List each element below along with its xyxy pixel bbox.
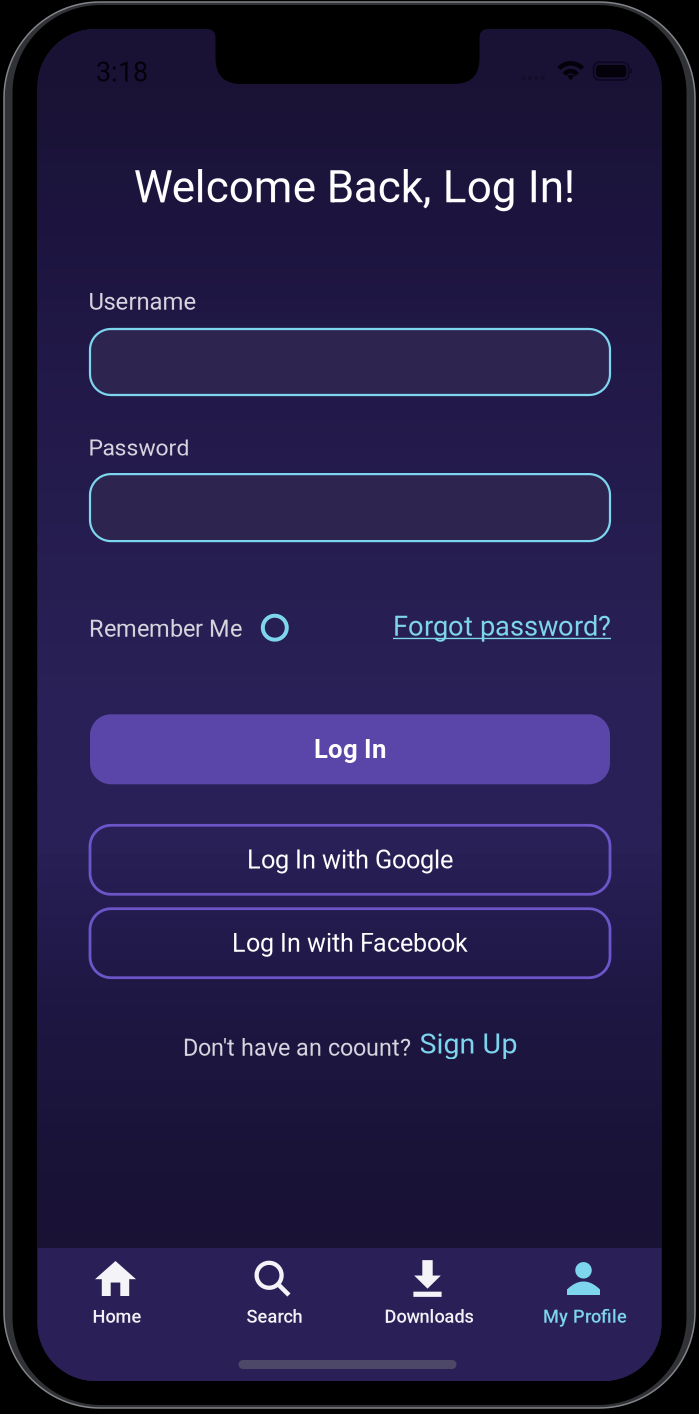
button[interactable]: Log In with Facebook bbox=[90, 909, 610, 978]
staticText: Log In with Google bbox=[247, 845, 453, 875]
button[interactable]: Forgot password? bbox=[393, 611, 611, 642]
button[interactable]: Log In bbox=[90, 714, 610, 784]
button[interactable]: Username bbox=[90, 329, 610, 395]
staticText: Username bbox=[88, 288, 196, 316]
button[interactable]: Sign Up bbox=[419, 1027, 517, 1060]
button[interactable]: Password bbox=[90, 474, 610, 541]
button[interactable]: Remember Me bbox=[263, 616, 287, 640]
button[interactable]: Search bbox=[195, 1248, 351, 1381]
staticText: Search bbox=[246, 1306, 302, 1327]
button[interactable]: Downloads bbox=[349, 1248, 505, 1381]
staticText: Remember Me bbox=[89, 615, 242, 642]
staticText: Log In bbox=[314, 734, 386, 764]
staticText: Log In with Facebook bbox=[232, 928, 468, 958]
staticText: Home bbox=[92, 1306, 141, 1327]
staticText: Welcome Back, Log In! bbox=[134, 161, 575, 213]
button[interactable]: Log In with Google bbox=[90, 825, 610, 894]
staticText: Sign Up bbox=[419, 1027, 517, 1060]
staticText: Forgot password? bbox=[393, 611, 611, 642]
staticText: Password bbox=[88, 434, 189, 461]
staticText: Downloads bbox=[384, 1306, 473, 1327]
button[interactable]: My Profile bbox=[505, 1248, 661, 1381]
staticText: My Profile bbox=[543, 1306, 627, 1327]
staticText: 3:18 bbox=[96, 56, 148, 88]
staticText: Don't have an coount? bbox=[183, 1034, 411, 1061]
button[interactable]: Home bbox=[37, 1248, 193, 1381]
